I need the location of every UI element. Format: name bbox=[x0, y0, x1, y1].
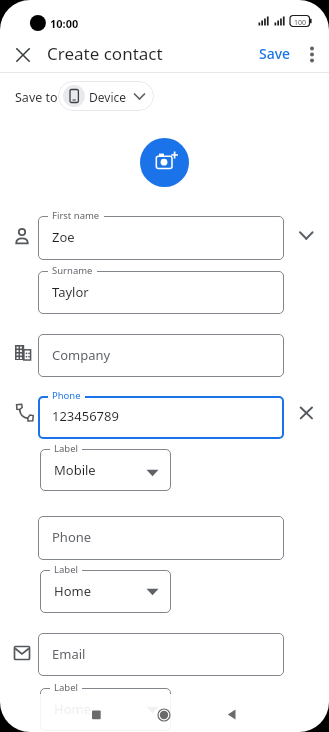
button[interactable] bbox=[38, 334, 284, 377]
button[interactable] bbox=[150, 701, 178, 729]
staticText: Phone bbox=[52, 528, 92, 546]
staticText: Label bbox=[54, 563, 78, 576]
staticText: Save bbox=[259, 44, 291, 63]
staticText: 10:00 bbox=[50, 16, 79, 31]
button[interactable] bbox=[40, 570, 171, 613]
button[interactable] bbox=[38, 633, 284, 676]
staticText: 123456789 bbox=[52, 407, 119, 425]
staticText: Mobile bbox=[54, 461, 96, 479]
button[interactable] bbox=[38, 396, 284, 439]
staticText: Home bbox=[54, 700, 91, 718]
staticText: Zoe bbox=[52, 228, 75, 246]
staticText: First name bbox=[52, 209, 100, 222]
button[interactable] bbox=[82, 701, 110, 729]
staticText: Create contact bbox=[47, 42, 163, 65]
button[interactable] bbox=[40, 688, 171, 731]
button[interactable] bbox=[38, 271, 284, 314]
staticText: Phone bbox=[52, 389, 81, 402]
staticText: Email bbox=[52, 645, 86, 663]
staticText: Label bbox=[54, 681, 78, 694]
staticText: 100 bbox=[294, 18, 307, 28]
staticText: Label bbox=[54, 442, 78, 455]
button[interactable] bbox=[294, 401, 319, 426]
button[interactable] bbox=[40, 449, 171, 491]
button[interactable] bbox=[38, 516, 284, 560]
staticText: Device bbox=[89, 89, 127, 105]
button[interactable] bbox=[38, 216, 284, 260]
button[interactable]: Device bbox=[58, 81, 154, 111]
staticText: Save to bbox=[15, 89, 58, 106]
button[interactable] bbox=[294, 224, 319, 249]
staticText: Home bbox=[54, 582, 91, 600]
staticText: Taylor bbox=[52, 283, 89, 301]
staticText: Company bbox=[52, 346, 111, 364]
button[interactable]: Save bbox=[256, 40, 294, 66]
staticText: Surname bbox=[52, 264, 93, 277]
button[interactable] bbox=[302, 42, 322, 68]
button[interactable] bbox=[10, 42, 36, 68]
button[interactable] bbox=[217, 701, 245, 729]
button[interactable] bbox=[140, 138, 189, 187]
